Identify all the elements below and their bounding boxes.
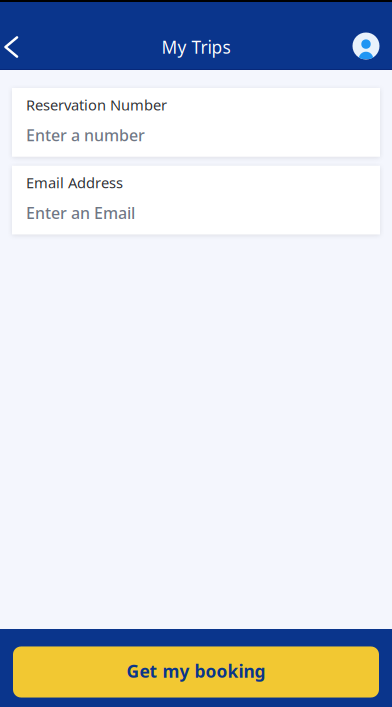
staticText: Email Address: [26, 173, 123, 192]
button[interactable]: Get my booking: [13, 646, 379, 697]
button[interactable]: Account: [344, 24, 388, 68]
staticText: Enter an Email: [26, 202, 135, 223]
staticText: Reservation Number: [26, 95, 167, 114]
staticText: My Trips: [161, 35, 230, 58]
button[interactable]: Back: [0, 24, 33, 68]
staticText: Get my booking: [126, 659, 265, 682]
staticText: Enter a number: [26, 124, 145, 146]
